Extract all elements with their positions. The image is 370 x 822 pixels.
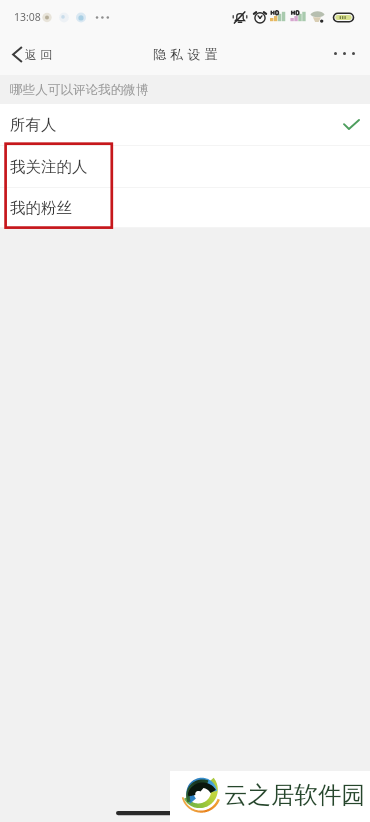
button[interactable]: 我的粉丝 — [0, 188, 370, 227]
button[interactable]: 所有人 — [0, 104, 370, 145]
button[interactable]: 返回 — [0, 40, 68, 69]
staticText: 我的粉丝 — [10, 198, 72, 218]
staticText: 我关注的人 — [10, 157, 88, 177]
button[interactable]: 我关注的人 — [0, 146, 370, 187]
staticText: 13:08 — [14, 10, 41, 24]
staticText: 所有人 — [10, 115, 57, 135]
staticText: 云之居软件园 — [224, 780, 365, 810]
staticText: 返回 — [25, 47, 56, 62]
button[interactable]: More options — [320, 41, 370, 68]
staticText: 哪些人可以评论我的微博 — [10, 82, 149, 98]
staticText: 隐私设置 — [153, 46, 222, 62]
